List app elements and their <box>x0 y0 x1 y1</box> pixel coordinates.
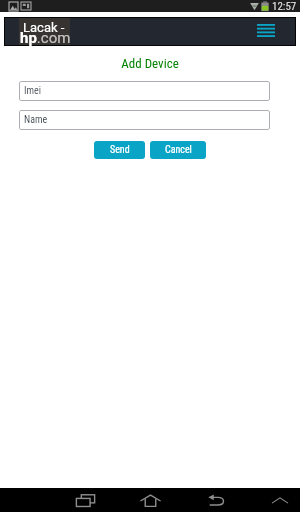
staticText: hp.com <box>20 29 71 47</box>
button[interactable]: Menu <box>254 20 278 40</box>
staticText: Cancel <box>165 144 192 156</box>
button[interactable]: Name <box>19 110 270 130</box>
button[interactable]: Expand <box>260 488 300 512</box>
button[interactable]: Lacak - <box>19 18 70 45</box>
button[interactable]: Send <box>94 141 145 159</box>
staticText: Add Device <box>0 56 300 71</box>
staticText: 12:57 <box>272 0 297 12</box>
button[interactable]: Cancel <box>150 141 206 159</box>
button[interactable]: Imei <box>19 81 270 101</box>
staticText: Imei <box>24 85 42 97</box>
button[interactable]: Back <box>196 488 236 512</box>
staticText: Send <box>110 144 130 156</box>
button[interactable]: Recents <box>65 488 105 512</box>
staticText: Name <box>24 114 48 126</box>
button[interactable]: Home <box>130 488 170 512</box>
staticText: Lacak - <box>23 20 65 35</box>
